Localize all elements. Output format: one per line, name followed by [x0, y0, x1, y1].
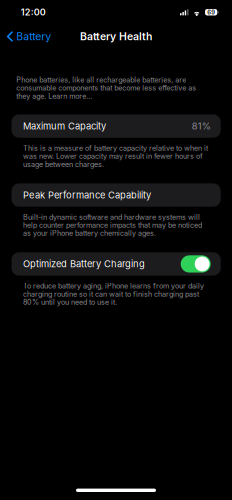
button[interactable]: Optimized Battery Charging [181, 255, 211, 273]
button[interactable]: Peak Performance Capability [11, 183, 221, 207]
staticText: Maximum Capacity [23, 120, 106, 132]
button[interactable]: Maximum Capacity [11, 114, 221, 138]
staticText: Peak Performance Capability [23, 189, 151, 201]
button[interactable]: Optimized Battery Charging [11, 252, 221, 276]
staticText: To reduce battery aging, iPhone learns f… [23, 282, 204, 306]
staticText: Battery Health [80, 30, 152, 43]
staticText: This is a measure of battery capacity re… [23, 144, 208, 169]
staticText: 81% [192, 120, 211, 132]
staticText: Battery [16, 30, 51, 43]
staticText: Built-in dynamic software and hardware s… [23, 213, 202, 238]
staticText: Phone batteries, like all rechargeable b… [16, 75, 196, 100]
staticText: 12:00 [21, 7, 46, 18]
button[interactable]: Battery [0, 25, 57, 47]
staticText: 69 [207, 9, 215, 16]
staticText: Optimized Battery Charging [23, 258, 145, 270]
